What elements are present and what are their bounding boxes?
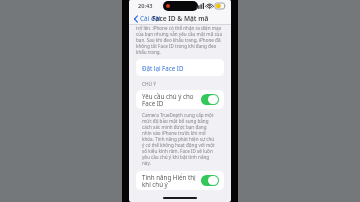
button[interactable]: Đặt lại Face ID	[136, 59, 224, 76]
staticText: Tính năng Hiển thị khi chú ý	[142, 173, 201, 189]
staticText: Đặt lại Face ID	[142, 64, 184, 72]
staticText: Face ID & Mật mã	[152, 14, 209, 23]
staticText: 20:43	[138, 2, 153, 10]
button[interactable]: Yêu cầu chú ý cho Face ID	[136, 90, 224, 109]
button[interactable]: Cài đặt	[129, 12, 164, 25]
staticText: Yêu cầu chú ý cho Face ID	[142, 92, 201, 108]
button[interactable]: Toggle	[201, 175, 219, 186]
staticText: Camera TrueDepth cung cấp một mức độ bảo…	[142, 112, 217, 166]
staticText: CHÚ Ý	[142, 81, 157, 88]
staticText: trở lên. iPhone có thể nhận ra diện mạo …	[136, 25, 224, 55]
button[interactable]: Tính năng Hiển thị khi chú ý	[136, 171, 224, 190]
button[interactable]: Toggle	[201, 94, 219, 105]
staticText: Cài đặt	[140, 14, 161, 23]
